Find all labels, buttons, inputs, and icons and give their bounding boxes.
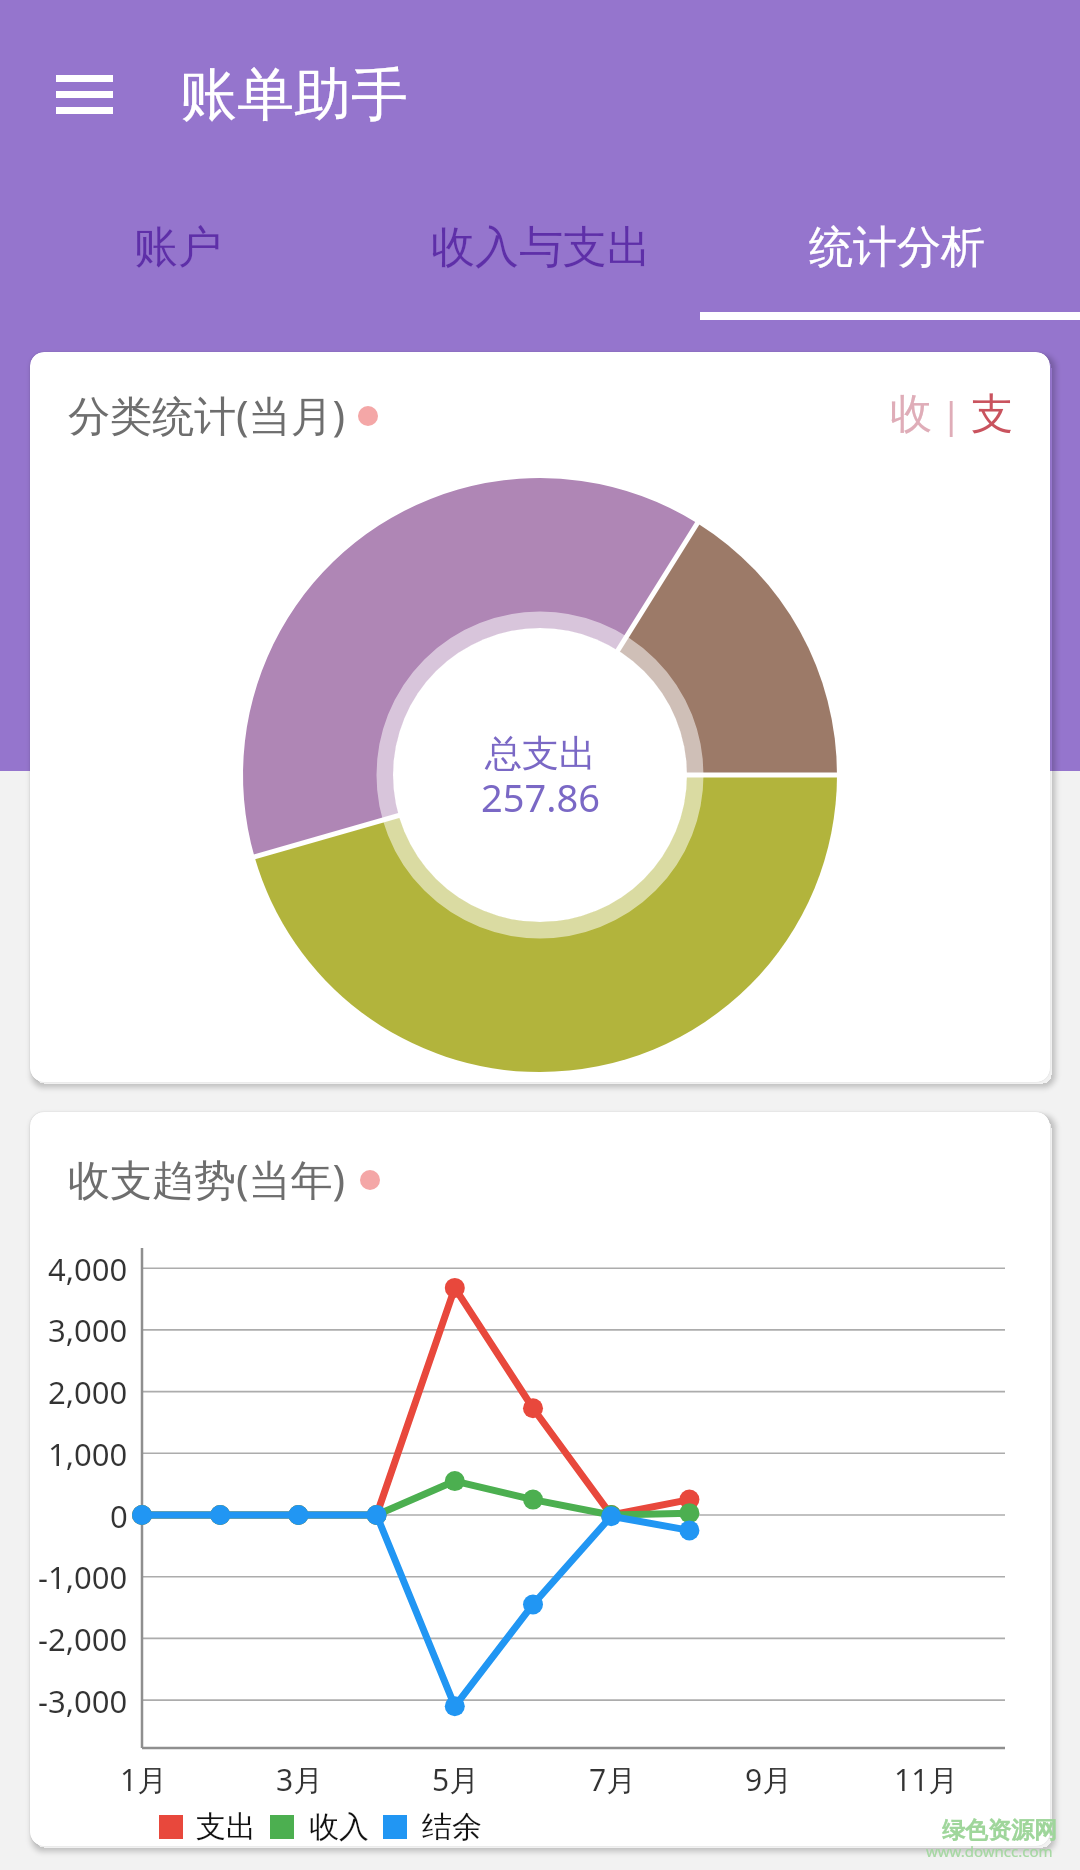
- button[interactable]: [40, 60, 130, 130]
- staticText: 结余: [422, 1808, 482, 1846]
- staticText: 收入与支出: [431, 220, 651, 275]
- staticText: 绿色资源网: [942, 1816, 1057, 1845]
- staticText: 统计分析: [809, 220, 985, 275]
- staticText: 3月: [276, 1759, 324, 1799]
- button[interactable]: [720, 190, 1080, 322]
- staticText: -3,000: [38, 1680, 128, 1720]
- staticText: 9月: [745, 1759, 793, 1799]
- staticText: 支: [971, 388, 1013, 441]
- staticText: 4,000: [48, 1248, 128, 1288]
- staticText: |: [932, 390, 971, 439]
- button[interactable]: 收: [890, 384, 1014, 444]
- staticText: 5月: [432, 1759, 480, 1799]
- staticText: 2,000: [48, 1371, 128, 1411]
- button[interactable]: [0, 190, 360, 322]
- staticText: 收: [890, 388, 932, 441]
- staticText: www.downcc.com: [926, 1841, 1053, 1861]
- staticText: -2,000: [38, 1618, 128, 1658]
- staticText: 257.86: [481, 771, 600, 821]
- staticText: 11月: [894, 1759, 959, 1799]
- staticText: 账单助手: [180, 59, 408, 131]
- button[interactable]: [360, 190, 720, 322]
- staticText: 0: [110, 1495, 128, 1535]
- staticText: 收支趋势(当年): [68, 1150, 346, 1207]
- staticText: -1,000: [38, 1556, 128, 1596]
- staticText: 分类统计(当月): [68, 386, 346, 443]
- staticText: 收入: [309, 1808, 369, 1846]
- staticText: 7月: [589, 1759, 637, 1799]
- staticText: 3,000: [48, 1309, 128, 1349]
- staticText: 1,000: [48, 1433, 128, 1473]
- staticText: 账户: [134, 220, 222, 275]
- staticText: 总支出: [485, 730, 596, 777]
- staticText: 1月: [120, 1759, 168, 1799]
- staticText: 支出: [196, 1808, 256, 1846]
